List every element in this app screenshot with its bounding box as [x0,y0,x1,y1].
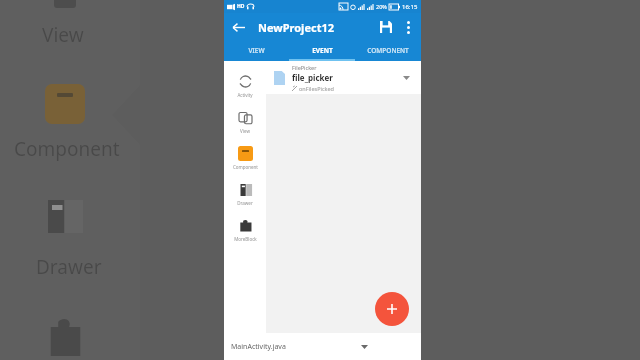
staticText: FilePicker [292,64,317,71]
staticText: View [42,22,84,48]
button[interactable]: Drawer [224,175,266,211]
button[interactable]: FilePicker [266,61,421,94]
button[interactable]: COMPONENT [355,41,421,59]
button[interactable]: Back [224,13,252,41]
staticText: Component [14,136,120,162]
staticText: 20% [376,3,387,10]
button[interactable]: VIEW [224,41,289,59]
staticText: Component [233,164,258,170]
button[interactable]: Activity [224,67,266,103]
button[interactable]: Add event [375,292,409,326]
button[interactable]: EVENT [289,41,355,59]
staticText: MoreBlock [234,236,257,242]
button[interactable]: Component [224,139,266,175]
button[interactable]: View [224,103,266,139]
staticText: VIEW [248,46,265,55]
button[interactable]: Save [373,14,399,40]
button[interactable]: MainActivity.java [224,333,375,360]
staticText: Drawer [237,200,253,206]
staticText: Activity [237,92,253,98]
staticText: onFilesPicked [299,85,334,92]
button[interactable]: More options [399,16,418,38]
staticText: View [240,128,250,134]
staticText: HD [237,3,245,10]
staticText: NewProject12 [258,20,373,35]
staticText: Drawer [36,254,102,280]
staticText: COMPONENT [367,46,409,55]
staticText: MainActivity.java [231,342,361,352]
staticText: 16:15 [402,3,418,11]
staticText: file_picker [292,72,333,83]
staticText: EVENT [312,46,333,55]
button[interactable]: MoreBlock [224,211,266,247]
button[interactable]: Expand [399,71,413,85]
